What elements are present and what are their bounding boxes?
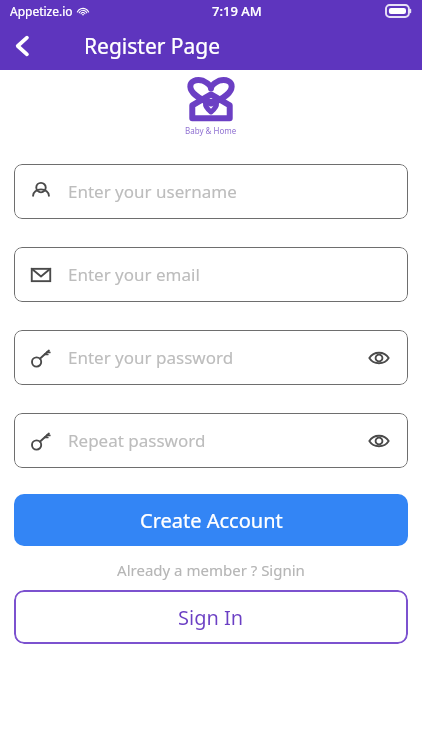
button[interactable]: Enter your email <box>14 247 408 302</box>
button[interactable]: Enter your username <box>14 164 408 219</box>
button[interactable]: Create Account <box>14 494 408 546</box>
staticText: Appetize.io <box>10 3 73 19</box>
staticText: Create Account <box>140 507 283 534</box>
staticText: Already a member ? Signin <box>117 560 305 580</box>
staticText: Enter your username <box>68 180 392 203</box>
button[interactable]: Show password <box>366 345 392 371</box>
staticText: Register Page <box>84 32 221 61</box>
button[interactable]: Show password <box>366 428 392 454</box>
staticText: Baby & Home <box>185 125 237 136</box>
staticText: Enter your password <box>68 346 366 369</box>
staticText: 7:19 AM <box>212 2 262 20</box>
staticText: Repeat password <box>68 429 366 452</box>
button[interactable]: Repeat password <box>14 413 408 468</box>
staticText: Enter your email <box>68 263 392 286</box>
button[interactable]: Sign In <box>14 590 408 644</box>
button[interactable]: Enter your password <box>14 330 408 385</box>
button[interactable]: Back <box>0 23 46 69</box>
staticText: Sign In <box>178 604 244 631</box>
